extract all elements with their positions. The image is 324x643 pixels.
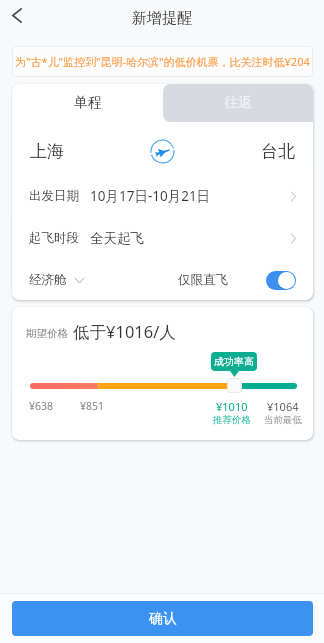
button[interactable]: 往返 (163, 84, 313, 122)
staticText: 往返 (224, 94, 252, 112)
staticText: 确认 (149, 610, 177, 628)
button[interactable]: 为"古*儿"监控到"昆明-哈尔滨"的低价机票，比关注时低¥204 (12, 46, 313, 77)
button[interactable]: Direct flights only (266, 271, 296, 290)
staticText: ¥851 (80, 399, 105, 413)
staticText: ¥1064 (267, 399, 299, 414)
staticText: 推荐价格 (213, 414, 251, 426)
staticText: ¥1010 (216, 399, 248, 414)
staticText: 期望价格 (26, 327, 68, 340)
staticText: ¥638 (29, 399, 54, 413)
button[interactable]: 单程 (12, 84, 163, 122)
staticText: 为"古*儿"监控到"昆明-哈尔滨"的低价机票，比关注时低¥204 (15, 54, 310, 69)
staticText: 当前最低 (264, 414, 302, 426)
staticText: 单程 (74, 94, 102, 112)
button[interactable]: Price slider (227, 378, 242, 393)
staticText: 10月17日-10月21日 (90, 187, 211, 205)
button[interactable]: 出发日期 (12, 175, 313, 217)
staticText: 成功率高 (214, 355, 254, 368)
staticText: 出发日期 (29, 188, 79, 204)
staticText: 全天起飞 (90, 230, 144, 247)
staticText: 新增提醒 (132, 9, 192, 28)
button[interactable]: 确认 (12, 601, 313, 636)
staticText: 起飞时段 (29, 230, 79, 246)
staticText: 经济舱 (29, 272, 67, 288)
button[interactable]: Back (0, 0, 33, 31)
staticText: 上海 (30, 141, 64, 162)
staticText: 台北 (261, 141, 295, 162)
staticText: 低于¥1016/人 (73, 320, 176, 343)
staticText: 仅限直飞 (178, 272, 228, 288)
button[interactable]: 起飞时段 (12, 217, 313, 259)
button[interactable]: 经济舱 (29, 272, 84, 288)
button[interactable]: Swap cities (147, 136, 177, 166)
